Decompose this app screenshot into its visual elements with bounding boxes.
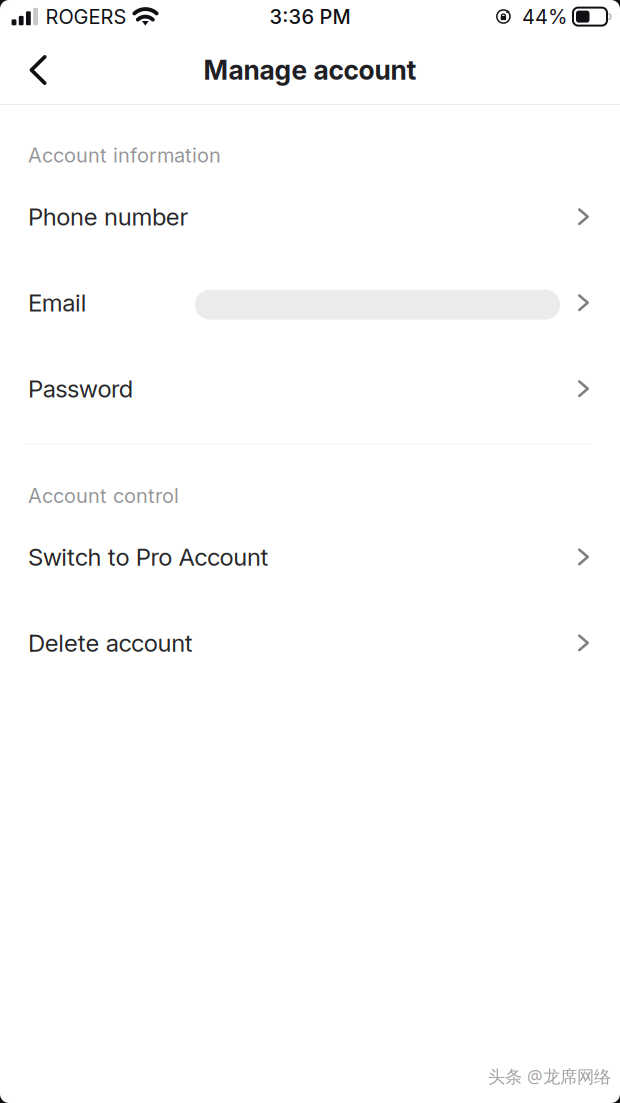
button[interactable]: Password [0, 346, 620, 432]
staticText: Delete account [28, 628, 193, 657]
staticText: 44% [522, 4, 567, 29]
button[interactable]: Phone number [0, 174, 620, 260]
button[interactable]: Delete account [0, 600, 620, 686]
button[interactable]: Back [9, 41, 67, 99]
staticText: Manage account [203, 54, 416, 86]
staticText: ROGERS [46, 4, 127, 29]
staticText: 头条 @龙席网络 [488, 1064, 611, 1088]
staticText: Switch to Pro Account [28, 542, 269, 571]
staticText: Account information [28, 143, 221, 167]
staticText: Account control [28, 484, 179, 508]
button[interactable]: Switch to Pro Account [0, 514, 620, 600]
staticText: Phone number [28, 202, 188, 231]
staticText: Password [28, 374, 133, 403]
staticText: Email [28, 288, 87, 317]
button[interactable]: Email [0, 260, 620, 346]
staticText: 3:36 PM [269, 4, 350, 29]
